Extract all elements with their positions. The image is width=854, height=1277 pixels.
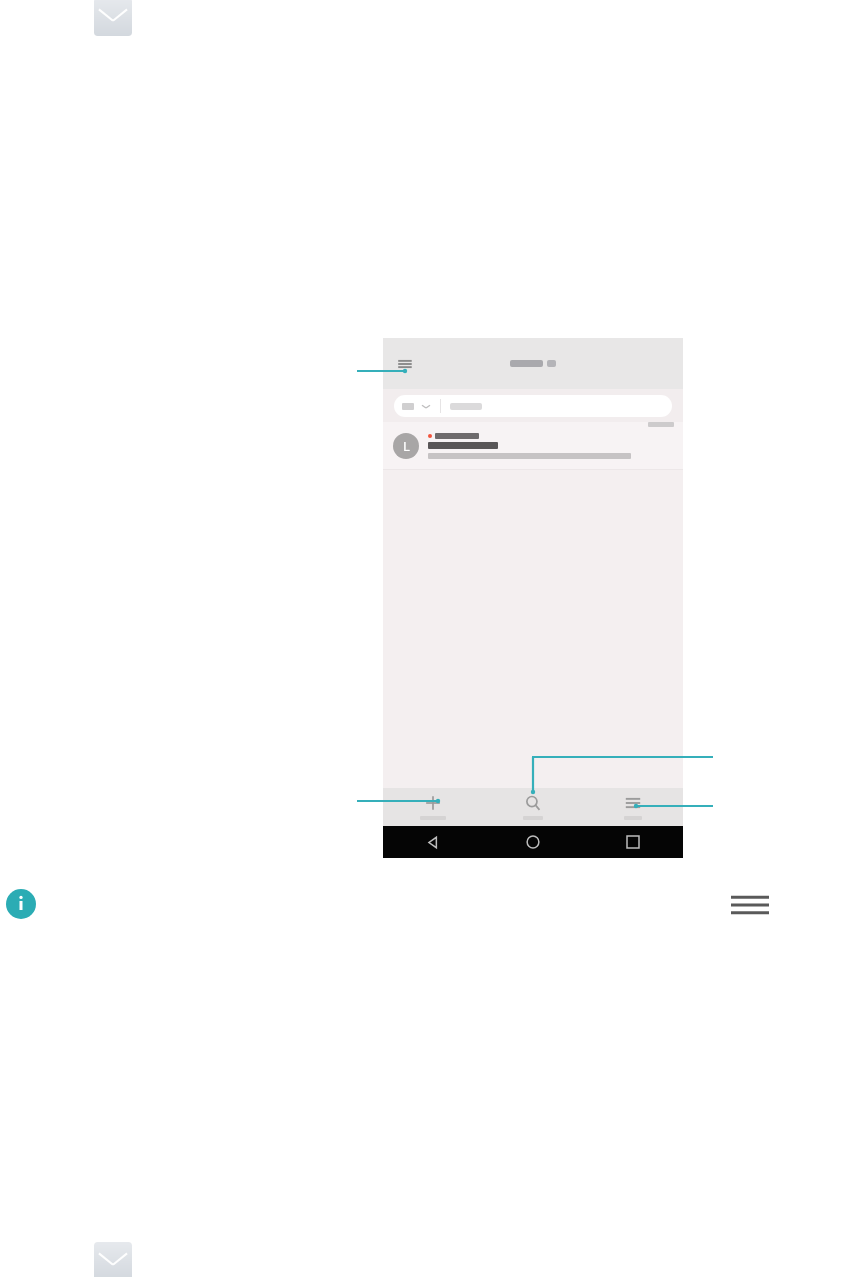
button[interactable]: Filter: All: [394, 395, 672, 417]
staticText: L: [403, 437, 410, 455]
button[interactable]: Menu: [731, 892, 769, 918]
button[interactable]: Filter: All: [394, 403, 440, 410]
button[interactable]: [383, 794, 483, 820]
other: Email: [94, 0, 132, 36]
button[interactable]: L: [383, 422, 683, 469]
button[interactable]: Back: [383, 836, 483, 849]
button[interactable]: Open navigation drawer: [393, 352, 419, 376]
button[interactable]: [483, 794, 583, 820]
other: Email: [94, 1242, 132, 1277]
button[interactable]: Information: [6, 889, 36, 919]
button[interactable]: [583, 794, 683, 820]
button[interactable]: Recent apps: [583, 836, 683, 848]
button[interactable]: Home: [483, 835, 583, 849]
